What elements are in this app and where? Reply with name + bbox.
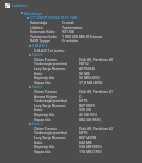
staticText: B6F10EF5	[79, 103, 95, 108]
staticText: Disk #0, Partition #0	[79, 57, 113, 62]
staticText: Osion Tunnus	[34, 57, 57, 62]
staticText: Kiintolevyt	[24, 11, 42, 16]
button[interactable]	[0, 107, 142, 112]
button[interactable]	[0, 48, 142, 53]
staticText: NTFS	[79, 98, 88, 103]
staticText: Osio 2	[32, 121, 43, 126]
staticText: Disk #0, Partition #1	[79, 89, 113, 94]
button[interactable]	[0, 121, 142, 126]
button[interactable]	[0, 80, 142, 85]
button[interactable]	[0, 34, 142, 39]
staticText: Valmistaja	[30, 20, 48, 25]
staticText: Disk #0, Partition #2	[79, 126, 113, 131]
staticText: 530 MB (82%)	[79, 144, 102, 149]
staticText: Vapaa tila	[34, 149, 51, 154]
staticText: Käytetty tila	[34, 75, 55, 80]
button[interactable]	[0, 20, 142, 25]
button[interactable]	[0, 89, 142, 94]
staticText: Käytetty tila	[34, 144, 55, 149]
button[interactable]	[0, 117, 142, 122]
staticText: Ei mikään	[62, 38, 79, 43]
staticText: C:	[79, 94, 83, 99]
button[interactable]	[0, 57, 142, 62]
button[interactable]	[0, 135, 142, 140]
staticText: Osion Tunnus	[34, 89, 57, 94]
staticText: Levy Sarja Numero	[34, 103, 66, 108]
button[interactable]	[0, 126, 142, 131]
button[interactable]	[0, 144, 142, 149]
button[interactable]	[0, 11, 142, 16]
staticText: Levy Sarja Numero	[34, 66, 66, 71]
button[interactable]	[0, 94, 142, 99]
staticText: 116 MB (18%)	[79, 149, 102, 154]
button[interactable]	[0, 66, 142, 71]
staticText: Koko	[34, 107, 43, 112]
staticText: Crucial	[62, 20, 74, 25]
staticText: Tuntematon	[62, 25, 83, 30]
button[interactable]	[0, 15, 142, 20]
button[interactable]: Laitteisto	[0, 0, 142, 11]
button[interactable]	[0, 43, 142, 48]
staticText: S.M.A.R.T ei tuettu	[34, 48, 65, 53]
staticText: 37,8 MB (40%)	[79, 80, 103, 85]
staticText: S.M.A.R.T	[32, 43, 48, 48]
staticText: Asema Kirjain	[34, 94, 57, 99]
staticText: FAT32	[79, 61, 89, 66]
staticText: Vapaa tila	[34, 80, 51, 85]
button[interactable]	[0, 39, 142, 44]
staticText: Osio 0	[32, 52, 43, 57]
staticText: RAID Tyyppi	[30, 38, 51, 43]
staticText: 644 MB	[79, 140, 92, 145]
staticText: 1 000 204 886 016 tavua	[62, 34, 102, 39]
staticText: 56 MB (58%)	[79, 75, 100, 80]
staticText: B6F1A2DB	[79, 135, 97, 140]
button[interactable]	[0, 140, 142, 145]
button[interactable]	[0, 75, 142, 80]
staticText: NTFS	[79, 130, 88, 135]
staticText: Laitteisto	[12, 3, 28, 8]
staticText: 96 MB	[79, 71, 90, 76]
staticText: Koko	[34, 140, 43, 145]
staticText: Levy Sarja Numero	[34, 135, 66, 140]
staticText: Käytetty tila	[34, 112, 55, 117]
staticText: Kokonais Koko	[30, 29, 55, 34]
staticText: Osio 1	[32, 84, 43, 89]
button[interactable]	[0, 25, 142, 30]
button[interactable]	[0, 62, 142, 67]
staticText: CT1000P3SSD8 (931 GB)	[30, 15, 78, 21]
staticText: Liitäntä	[30, 25, 43, 30]
staticText: Tiedostojärjestelmä	[34, 61, 68, 66]
button[interactable]	[0, 52, 142, 57]
staticText: A0750645	[79, 66, 96, 71]
staticText: 46 GB (5%)	[79, 112, 97, 117]
button[interactable]	[0, 84, 142, 89]
button[interactable]	[0, 112, 142, 117]
button[interactable]	[0, 98, 142, 103]
button[interactable]	[0, 131, 142, 136]
staticText: Tiedostojärjestelmä	[34, 98, 68, 103]
staticText: Tiedostojärjestelmä	[34, 130, 68, 135]
staticText: Toiminnan koko	[30, 34, 57, 39]
button[interactable]	[0, 71, 142, 76]
staticText: 884 GB (95%)	[79, 117, 101, 122]
staticText: Vapaa tila	[34, 117, 51, 122]
staticText: Osion Tunnus	[34, 126, 57, 131]
button[interactable]	[0, 29, 142, 34]
button[interactable]	[0, 103, 142, 108]
staticText: 930 GB	[79, 107, 91, 112]
staticText: 931 GB	[62, 29, 74, 34]
button[interactable]	[0, 149, 142, 154]
staticText: Koko	[34, 71, 43, 76]
